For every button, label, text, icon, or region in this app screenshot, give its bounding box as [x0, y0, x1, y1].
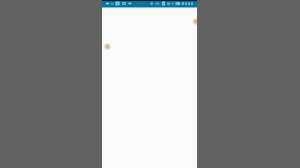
button[interactable]: Floating action buttons [102, 0, 197, 168]
